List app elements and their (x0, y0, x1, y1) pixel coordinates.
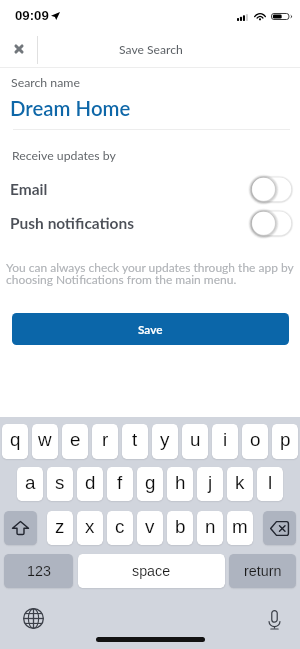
staticText: n (205, 516, 216, 537)
staticText: Receive updates by (12, 148, 116, 163)
staticText: b (175, 516, 186, 537)
staticText: s (55, 472, 65, 493)
button[interactable]: Backspace (263, 511, 296, 545)
button[interactable]: g (137, 467, 163, 501)
staticText: a (25, 472, 36, 493)
staticText: u (190, 429, 201, 450)
button[interactable]: k (227, 467, 253, 501)
staticText: g (145, 472, 156, 493)
staticText: You can always check your updates throug… (6, 260, 300, 287)
button[interactable]: Close (0, 29, 37, 67)
button[interactable]: n (197, 511, 223, 545)
staticText: t (132, 429, 138, 450)
staticText: i (223, 429, 228, 450)
button[interactable]: f (107, 467, 133, 501)
staticText: v (145, 516, 155, 537)
button[interactable]: 123 (4, 554, 73, 588)
staticText: Push notifications (10, 214, 135, 233)
button[interactable]: Dictate (262, 608, 286, 632)
staticText: f (117, 472, 123, 493)
staticText: Save Search (119, 42, 183, 57)
button[interactable]: e (62, 424, 88, 459)
button[interactable]: x (77, 511, 103, 545)
button[interactable]: r (92, 424, 118, 459)
staticText: k (235, 472, 245, 493)
button[interactable]: y (152, 424, 178, 459)
button[interactable]: z (47, 511, 73, 545)
button[interactable]: j (197, 467, 223, 501)
staticText: z (55, 516, 65, 537)
staticText: space (132, 563, 171, 579)
button[interactable]: b (167, 511, 193, 545)
staticText: Save (138, 322, 163, 336)
button[interactable]: space (78, 554, 225, 588)
staticText: l (268, 472, 273, 493)
button[interactable]: t (122, 424, 148, 459)
staticText: 123 (27, 563, 51, 579)
staticText: h (175, 472, 186, 493)
staticText: y (160, 429, 170, 450)
button[interactable]: Save (12, 313, 289, 345)
staticText: q (10, 429, 21, 450)
button[interactable]: i (212, 424, 238, 459)
staticText: x (85, 516, 95, 537)
button[interactable]: v (137, 511, 163, 545)
button[interactable]: m (227, 511, 253, 545)
staticText: d (85, 472, 96, 493)
button[interactable]: d (77, 467, 103, 501)
button[interactable]: u (182, 424, 208, 459)
staticText: Search name (11, 75, 80, 90)
button[interactable]: return (229, 554, 296, 588)
button[interactable]: p (272, 424, 298, 459)
button[interactable]: l (257, 467, 283, 501)
staticText: c (115, 516, 125, 537)
staticText: Dream Home (10, 96, 131, 120)
staticText: m (232, 516, 248, 537)
button[interactable]: Push notifications (0, 208, 300, 238)
button[interactable]: c (107, 511, 133, 545)
button[interactable]: s (47, 467, 73, 501)
staticText: w (38, 429, 52, 450)
staticText: o (250, 429, 261, 450)
staticText: Email (10, 180, 48, 199)
button[interactable]: w (32, 424, 58, 459)
button[interactable]: h (167, 467, 193, 501)
staticText: r (102, 429, 109, 450)
button[interactable]: Email (0, 174, 300, 204)
button[interactable]: q (2, 424, 28, 459)
staticText: return (244, 563, 282, 579)
staticText: p (280, 429, 291, 450)
button[interactable]: Shift (4, 511, 37, 545)
staticText: j (208, 472, 213, 493)
button[interactable]: a (17, 467, 43, 501)
staticText: 09:09 (15, 8, 49, 23)
staticText: e (70, 429, 81, 450)
button[interactable]: o (242, 424, 268, 459)
button[interactable]: Change keyboard language (21, 606, 45, 630)
